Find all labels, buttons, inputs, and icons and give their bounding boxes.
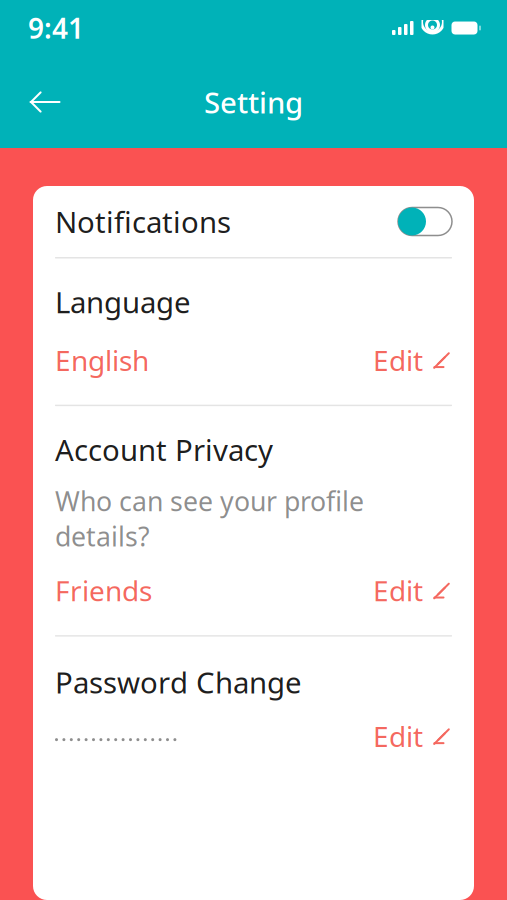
button[interactable]: Notifications (33, 186, 474, 257)
staticText: Edit (373, 718, 423, 755)
staticText: Edit (373, 572, 423, 609)
staticText: Account Privacy (55, 430, 273, 469)
staticText: Notifications (55, 202, 231, 241)
staticText: Setting (204, 82, 303, 121)
button[interactable]: Edit (363, 714, 452, 759)
button[interactable]: Edit (363, 337, 452, 383)
staticText: Friends (55, 572, 152, 609)
staticText: Language (55, 282, 191, 321)
staticText: Password Change (55, 663, 302, 702)
staticText: 9:41 (28, 9, 84, 47)
staticText: English (55, 341, 149, 379)
staticText: Who can see your profile details? (55, 483, 364, 554)
button[interactable]: Edit (363, 568, 452, 613)
button[interactable]: Back (18, 75, 72, 129)
staticText: Edit (373, 341, 423, 379)
